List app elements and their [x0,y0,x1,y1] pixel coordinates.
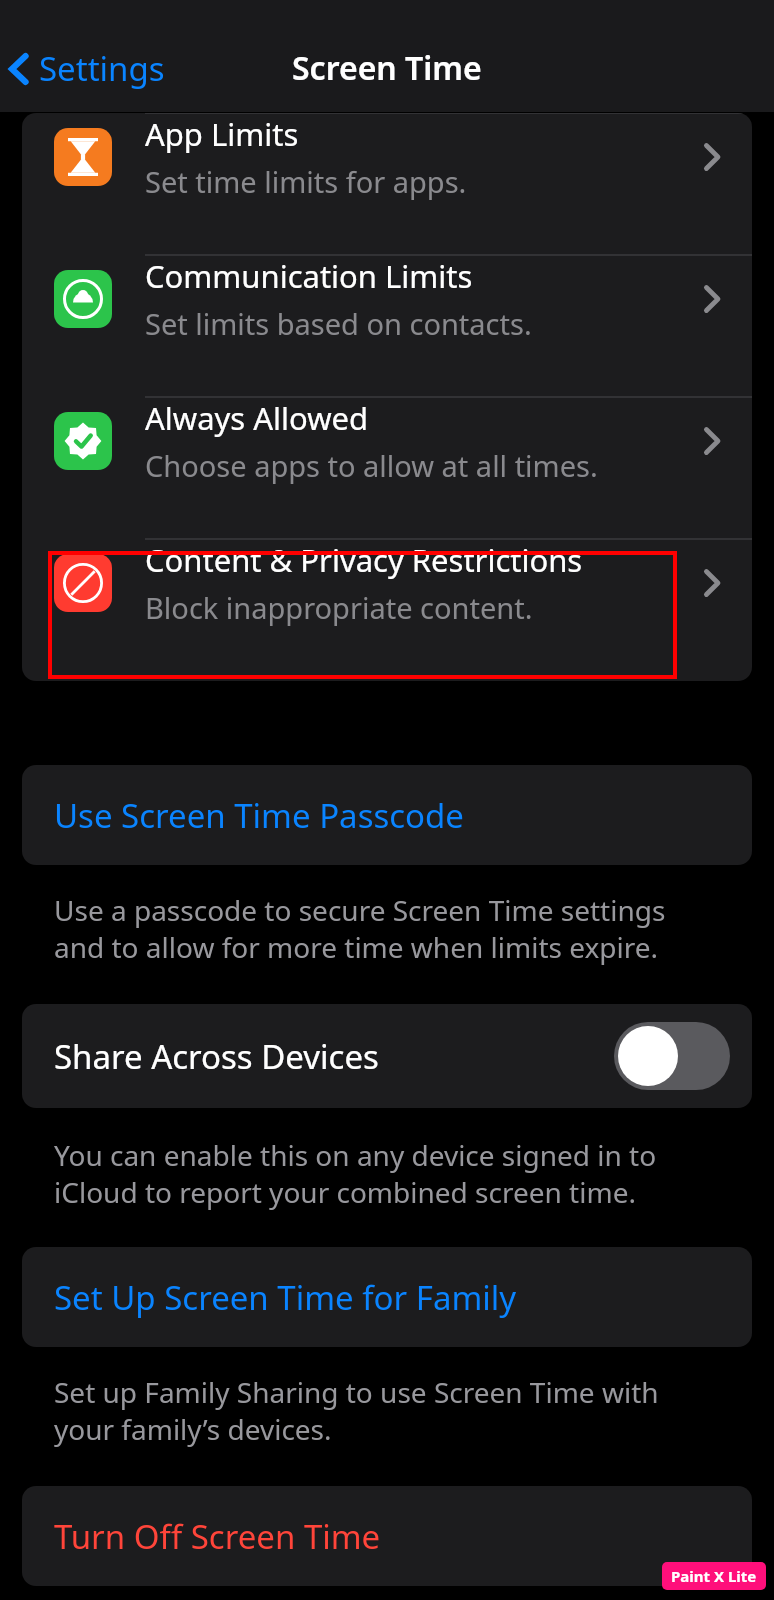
button[interactable]: Always Allowed [22,397,752,539]
staticText: Use Screen Time Passcode [54,793,464,838]
button[interactable]: App Limits [22,113,752,255]
staticText: App Limits [145,113,299,155]
staticText: Choose apps to allow at all times. [145,446,598,485]
button[interactable]: Content & Privacy Restrictions [22,539,752,681]
staticText: Turn Off Screen Time [54,1514,381,1559]
button[interactable]: Use Screen Time Passcode [22,765,752,865]
staticText: Screen Time [292,46,482,90]
staticText: Use a passcode to secure Screen Time set… [54,891,720,966]
staticText: Settings [39,46,165,91]
button[interactable]: Set Up Screen Time for Family [22,1247,752,1347]
staticText: Set limits based on contacts. [145,304,532,343]
button[interactable]: Settings [0,40,175,97]
staticText: Paint X Lite [671,1566,757,1586]
button[interactable]: Communication Limits [22,255,752,397]
button[interactable]: Share Across Devices toggle [614,1022,730,1090]
staticText: Communication Limits [145,255,473,297]
staticText: Share Across Devices [54,1034,614,1079]
staticText: Block inappropriate content. [145,588,533,627]
staticText: Set Up Screen Time for Family [54,1275,517,1320]
staticText: Set time limits for apps. [145,162,467,201]
staticText: Always Allowed [145,397,369,439]
staticText: You can enable this on any device signed… [54,1136,720,1211]
staticText: Set up Family Sharing to use Screen Time… [54,1373,720,1448]
button[interactable]: Turn Off Screen Time [22,1486,752,1586]
staticText: Content & Privacy Restrictions [145,539,583,581]
button[interactable]: Share Across Devices [22,1004,752,1108]
